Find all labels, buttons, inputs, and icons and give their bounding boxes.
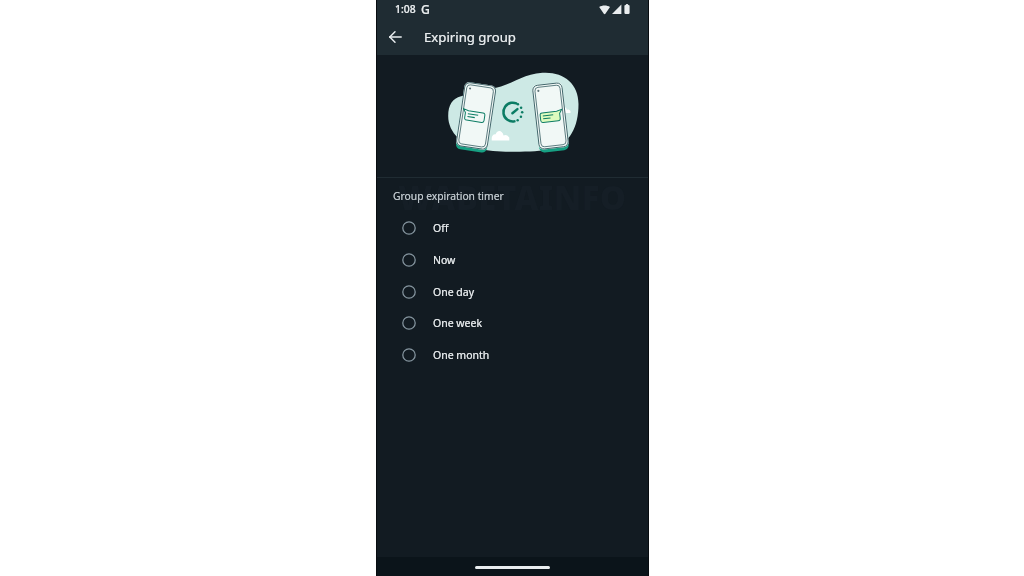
button[interactable]: Back bbox=[376, 18, 415, 55]
button[interactable]: Now bbox=[376, 244, 649, 276]
staticText: Now bbox=[433, 253, 456, 267]
staticText: 1:08 bbox=[395, 2, 416, 16]
staticText: G bbox=[421, 1, 430, 18]
button[interactable]: One month bbox=[376, 339, 649, 371]
staticText: One week bbox=[433, 316, 483, 330]
button[interactable]: Off bbox=[376, 212, 649, 244]
button[interactable]: One day bbox=[376, 276, 649, 308]
staticText: One day bbox=[433, 285, 475, 299]
staticText: Expiring group bbox=[424, 28, 516, 46]
staticText: One month bbox=[433, 348, 490, 362]
button[interactable]: One week bbox=[376, 307, 649, 339]
staticText: Group expiration timer bbox=[393, 189, 504, 203]
staticText: WABETAINFO bbox=[398, 175, 627, 220]
staticText: Off bbox=[433, 221, 449, 235]
